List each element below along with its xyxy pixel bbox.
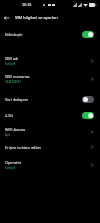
staticText: Turkcell [5, 62, 16, 66]
other: Open [90, 129, 94, 135]
button[interactable]: 4.5G [0, 109, 100, 121]
other: Open [90, 76, 94, 82]
button[interactable]: SIM adı [0, 52, 100, 69]
button[interactable]: On [82, 31, 94, 38]
button[interactable]: Etkinleştir [0, 28, 100, 40]
staticText: 5324724501 [5, 80, 21, 84]
button[interactable]: SIM numarası [0, 70, 100, 87]
staticText: 20:33 [22, 2, 32, 7]
button[interactable]: WiFi Arama [0, 123, 100, 140]
other: Open [90, 162, 94, 168]
staticText: SIM bilgileri ve ayarları [15, 15, 58, 20]
button[interactable]: Back [0, 11, 13, 24]
staticText: SIM adı [5, 56, 19, 61]
button[interactable]: On [82, 112, 94, 119]
other: Open [90, 58, 94, 64]
button[interactable]: Veri dolaşımı [0, 93, 100, 105]
staticText: Turkcell [5, 166, 16, 170]
staticText: Açık [5, 133, 11, 137]
staticText: Operatör [5, 160, 22, 165]
staticText: Veri dolaşımı [5, 97, 28, 102]
other: Open [90, 144, 94, 150]
staticText: Etkinleştir [5, 32, 23, 37]
button[interactable]: Operatör [0, 156, 100, 173]
button[interactable]: Off [82, 96, 94, 103]
staticText: WiFi Arama [5, 127, 26, 132]
staticText: SIM numarası [5, 74, 30, 79]
staticText: Erişim noktası adları [5, 145, 42, 150]
button[interactable]: Erişim noktası adları [0, 141, 100, 153]
staticText: 4.5G [5, 113, 14, 118]
